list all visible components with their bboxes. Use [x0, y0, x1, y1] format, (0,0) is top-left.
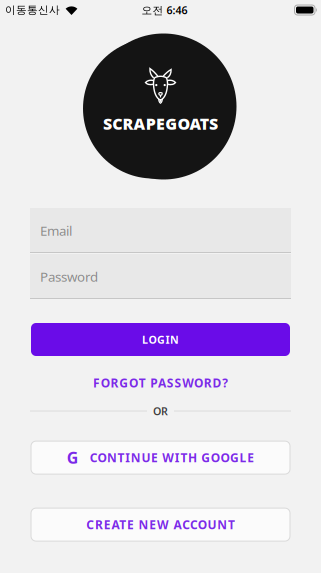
staticText: G — [67, 447, 79, 468]
button[interactable]: LOGIN — [31, 323, 290, 356]
staticText: Password — [40, 268, 98, 285]
staticText: 이동통신사 — [5, 3, 60, 16]
button[interactable]: Email — [30, 208, 291, 253]
button[interactable]: FORGOT PASSWORD? — [93, 375, 228, 391]
staticText: CREATE NEW ACCOUNT — [86, 517, 235, 532]
staticText: FORGOT PASSWORD? — [93, 375, 228, 391]
staticText: Email — [40, 222, 72, 239]
button[interactable]: CREATE NEW ACCOUNT — [31, 508, 290, 541]
staticText: CONTINUE WITH GOOGLE — [90, 450, 254, 465]
staticText: SCRAPEGOATS — [103, 113, 218, 134]
staticText: LOGIN — [142, 332, 179, 347]
button[interactable]: Password — [30, 254, 291, 299]
button[interactable]: G — [31, 441, 290, 474]
staticText: OR — [153, 404, 168, 418]
staticText: 오전 6:46 — [141, 3, 187, 17]
